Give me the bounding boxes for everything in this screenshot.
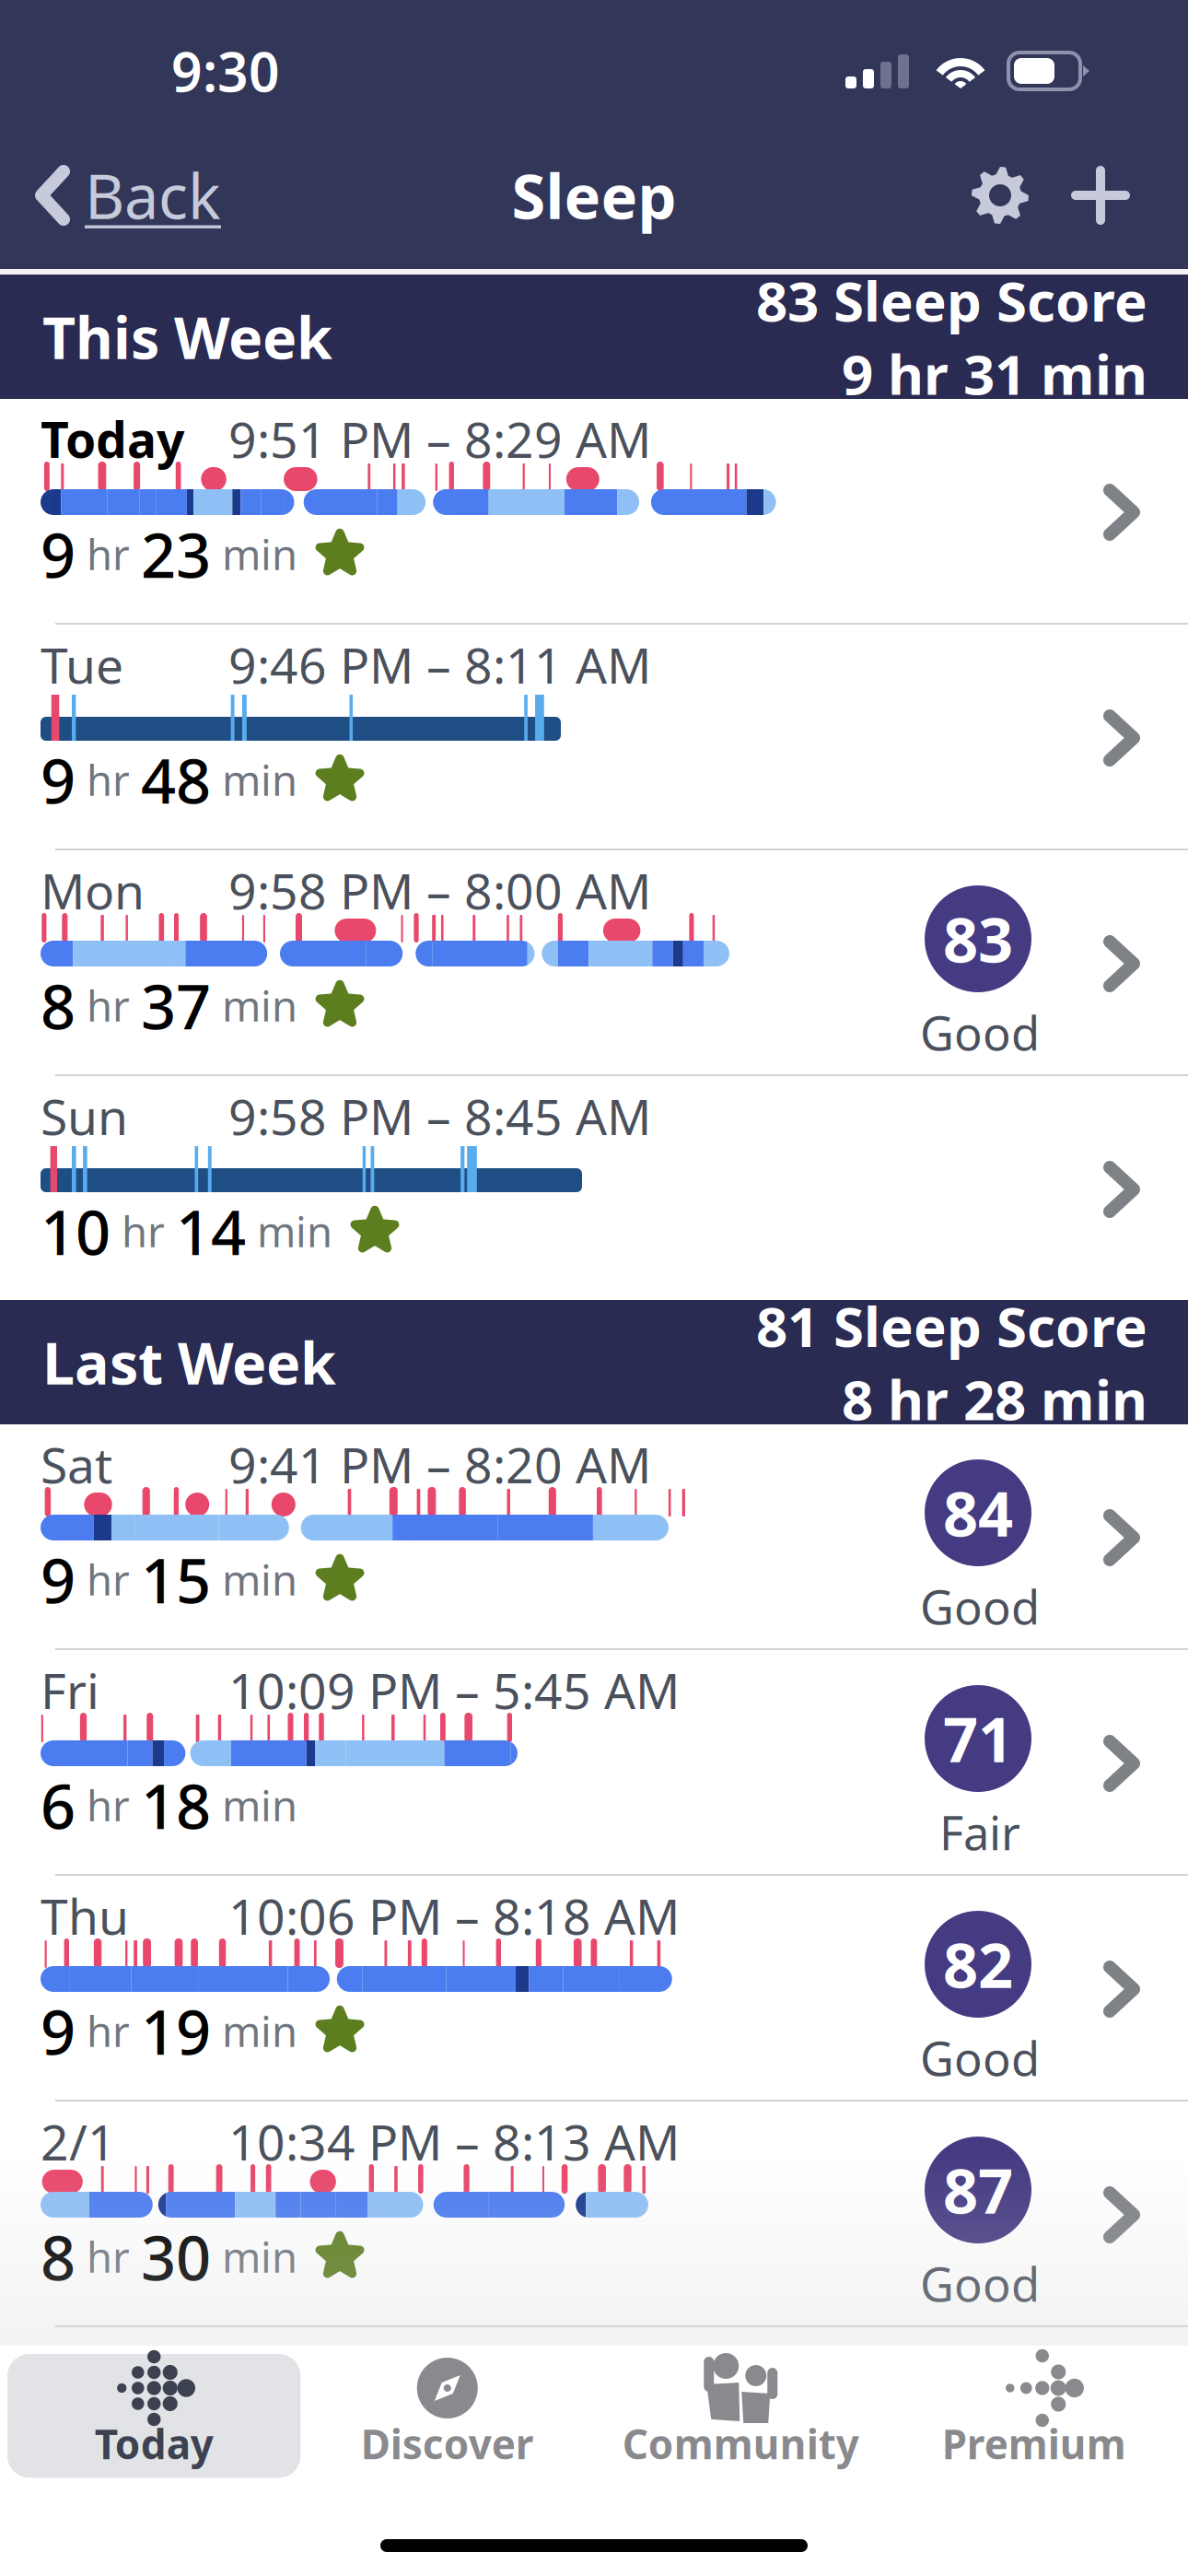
- staticText: Sat: [41, 1432, 112, 1497]
- staticText: Mon: [41, 858, 145, 923]
- staticText: 14: [176, 1190, 246, 1272]
- staticText: 9:41 PM – 8:20 AM: [228, 1432, 651, 1497]
- staticText: Thu: [41, 1883, 129, 1948]
- staticText: Good: [920, 1001, 1040, 1063]
- staticText: Sun: [41, 1083, 128, 1149]
- button[interactable]: Today: [0, 399, 1188, 623]
- staticText: min: [211, 978, 297, 1033]
- staticText: 48: [141, 739, 211, 820]
- button[interactable]: Settings: [954, 122, 1046, 269]
- staticText: 83: [943, 898, 1013, 980]
- staticText: 10:09 PM – 5:45 AM: [228, 1657, 680, 1723]
- staticText: 9: [41, 739, 76, 820]
- staticText: hr: [76, 1552, 141, 1607]
- staticText: 9:51 PM – 8:29 AM: [228, 406, 651, 472]
- staticText: 19: [141, 1990, 211, 2072]
- staticText: Discover: [361, 2417, 534, 2470]
- button[interactable]: Sun: [0, 1076, 1188, 1300]
- staticText: 9:58 PM – 8:45 AM: [228, 1083, 651, 1149]
- button[interactable]: Add sleep log: [1046, 122, 1155, 269]
- staticText: 10:06 PM – 8:18 AM: [228, 1883, 680, 1948]
- button[interactable]: Mon: [0, 850, 1188, 1074]
- staticText: 9: [41, 1539, 76, 1620]
- staticText: min: [211, 2229, 297, 2284]
- staticText: Good: [920, 2253, 1040, 2315]
- staticText: min: [246, 1203, 332, 1259]
- button[interactable]: Premium: [887, 2354, 1181, 2478]
- staticText: Today: [95, 2417, 213, 2470]
- staticText: 15: [141, 1539, 211, 1620]
- staticText: 9:46 PM – 8:11 AM: [228, 632, 651, 697]
- staticText: hr: [76, 1777, 141, 1833]
- staticText: Good: [920, 1575, 1040, 1637]
- staticText: 30: [141, 2216, 211, 2297]
- staticText: hr: [76, 752, 141, 807]
- staticText: 23: [141, 513, 211, 595]
- staticText: 37: [141, 965, 211, 1046]
- staticText: 9:58 PM – 8:00 AM: [228, 858, 651, 923]
- button[interactable]: Today: [7, 2354, 301, 2478]
- staticText: min: [211, 1777, 297, 1833]
- button[interactable]: Tue: [0, 625, 1188, 849]
- staticText: hr: [76, 2003, 141, 2059]
- staticText: 82: [943, 1923, 1013, 2005]
- staticText: Sleep: [512, 155, 676, 236]
- staticText: Premium: [942, 2417, 1126, 2470]
- staticText: min: [211, 526, 297, 582]
- staticText: 9 hr 31 min: [842, 337, 1147, 410]
- staticText: Tue: [41, 632, 123, 697]
- staticText: 87: [943, 2149, 1013, 2231]
- button[interactable]: Back: [0, 122, 241, 269]
- button[interactable]: Fri: [0, 1650, 1188, 1874]
- staticText: min: [211, 2003, 297, 2059]
- staticText: 8 hr 28 min: [842, 1362, 1147, 1436]
- staticText: hr: [76, 526, 141, 582]
- staticText: 6: [41, 1764, 76, 1846]
- staticText: 2/1: [41, 2109, 116, 2174]
- staticText: 10: [41, 1190, 111, 1272]
- staticText: Good: [920, 2027, 1040, 2089]
- staticText: 81 Sleep Score: [756, 1289, 1147, 1362]
- staticText: 18: [141, 1764, 211, 1846]
- staticText: Today: [41, 406, 184, 472]
- staticText: 9:30: [171, 35, 280, 107]
- button[interactable]: Community: [594, 2354, 887, 2478]
- button[interactable]: Thu: [0, 1876, 1188, 2100]
- staticText: min: [211, 1552, 297, 1607]
- staticText: 83 Sleep Score: [756, 263, 1147, 337]
- staticText: Fri: [41, 1657, 99, 1723]
- staticText: 8: [41, 2216, 76, 2297]
- button[interactable]: Sat: [0, 1424, 1188, 1648]
- staticText: hr: [111, 1203, 176, 1259]
- staticText: 10:34 PM – 8:13 AM: [228, 2109, 680, 2174]
- staticText: Community: [622, 2417, 859, 2470]
- staticText: 9: [41, 513, 76, 595]
- button[interactable]: Discover: [301, 2354, 594, 2478]
- staticText: Fair: [939, 1801, 1020, 1863]
- staticText: hr: [76, 978, 141, 1033]
- staticText: min: [211, 752, 297, 807]
- staticText: 9: [41, 1990, 76, 2072]
- staticText: 71: [943, 1698, 1013, 1779]
- staticText: hr: [76, 2229, 141, 2284]
- staticText: Last Week: [42, 1324, 336, 1400]
- staticText: Back: [85, 155, 221, 236]
- staticText: 84: [943, 1472, 1013, 1554]
- staticText: This Week: [42, 298, 332, 375]
- staticText: 8: [41, 965, 76, 1046]
- button[interactable]: 2/1: [0, 2102, 1188, 2325]
